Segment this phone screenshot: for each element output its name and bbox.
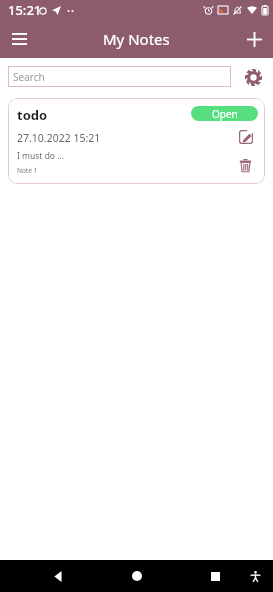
button[interactable]: Settings bbox=[241, 65, 265, 89]
button[interactable]: Edit note bbox=[236, 127, 255, 146]
staticText: My Notes bbox=[103, 29, 170, 49]
button[interactable]: Home bbox=[121, 560, 153, 592]
button[interactable]: Open bbox=[191, 106, 258, 121]
staticText: 15:21 bbox=[8, 1, 42, 19]
staticText: Search bbox=[13, 70, 45, 84]
staticText: todo bbox=[17, 106, 48, 124]
staticText: I must do ... bbox=[17, 150, 65, 162]
staticText: Note 1 bbox=[17, 166, 38, 175]
staticText: 27.10.2022 15:21 bbox=[17, 131, 101, 145]
button[interactable]: Back bbox=[42, 560, 74, 592]
button[interactable]: Search bbox=[8, 66, 231, 87]
button[interactable]: Delete note bbox=[236, 156, 255, 175]
button[interactable]: Accessibility bbox=[241, 562, 269, 590]
button[interactable]: Recent apps bbox=[199, 560, 231, 592]
button[interactable]: todo bbox=[8, 98, 265, 184]
staticText: Open bbox=[212, 107, 238, 121]
button[interactable]: Menu bbox=[0, 20, 38, 58]
button[interactable]: Add note bbox=[235, 20, 273, 58]
